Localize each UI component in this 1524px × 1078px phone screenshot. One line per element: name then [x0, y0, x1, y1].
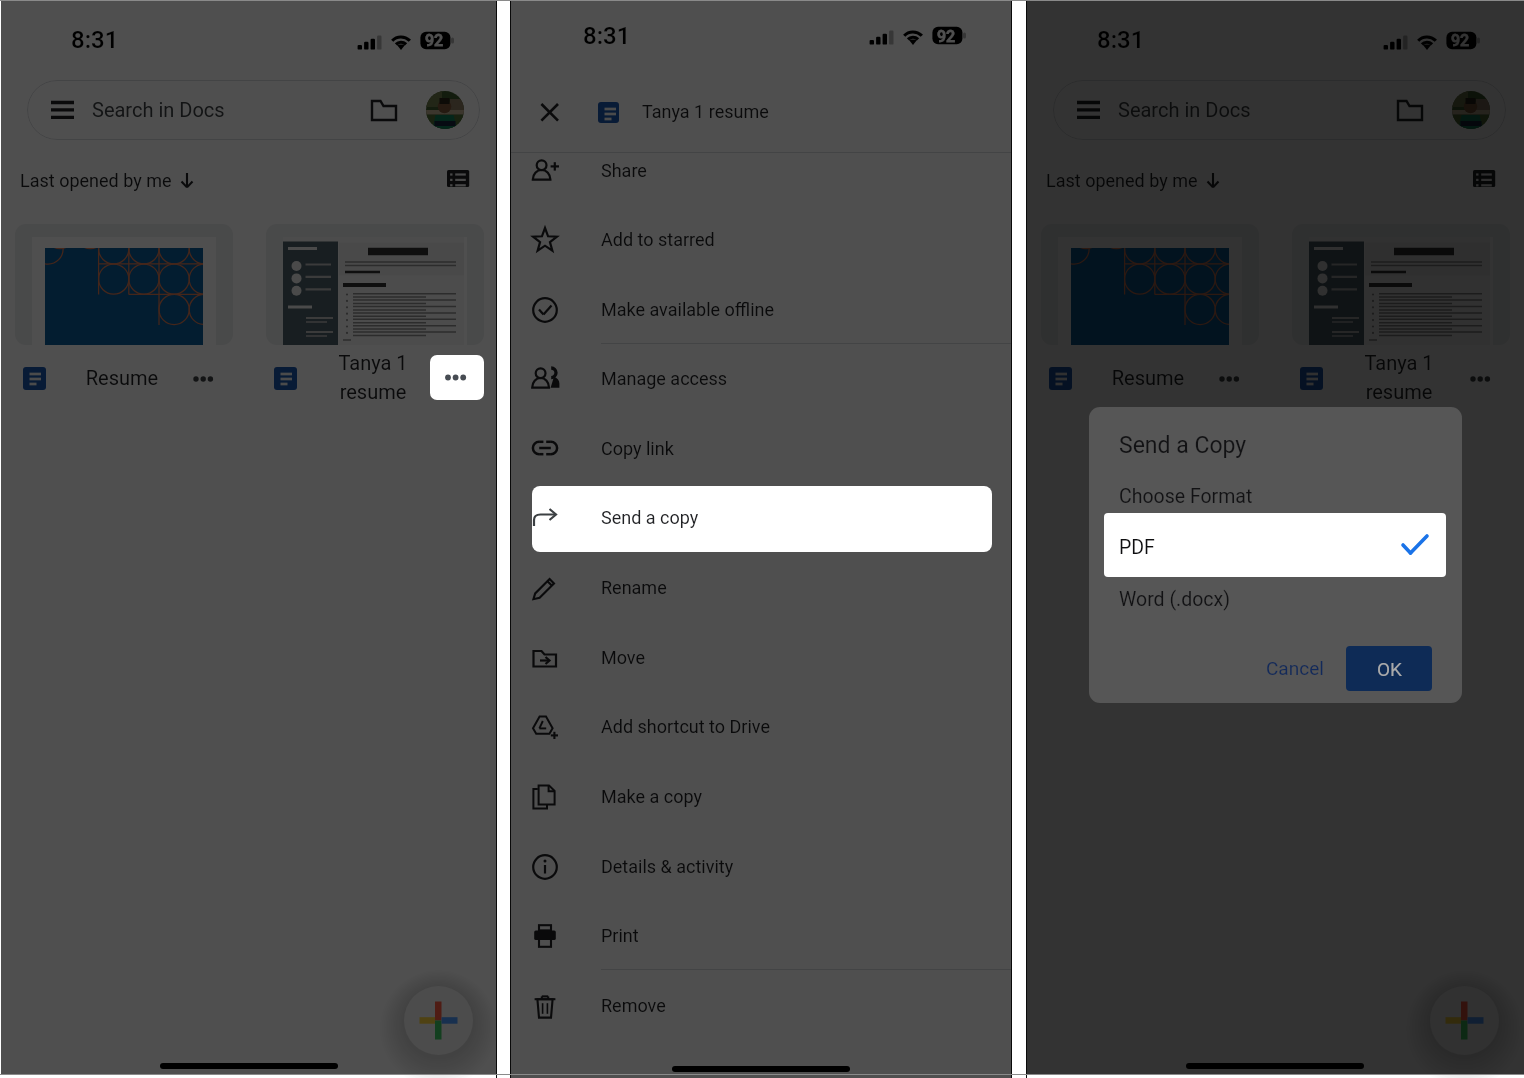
button[interactable]: Print: [532, 904, 991, 970]
button[interactable]: Send a copy: [532, 486, 992, 552]
button[interactable]: Create new document: [404, 986, 473, 1055]
button[interactable]: More options: [193, 368, 223, 390]
button[interactable]: Search in Docs: [1053, 80, 1506, 140]
button[interactable]: More options: [1219, 368, 1249, 390]
staticText: Rename: [601, 577, 667, 598]
staticText: PDF: [1119, 536, 1155, 559]
staticText: Add to starred: [601, 229, 715, 250]
staticText: Search in Docs: [1118, 98, 1251, 121]
button[interactable]: Remove: [532, 974, 991, 1040]
staticText: Move: [601, 647, 645, 668]
button[interactable]: Last opened by me: [1046, 165, 1223, 195]
staticText: Send a Copy: [1119, 432, 1247, 459]
button[interactable]: Switch to list view: [1473, 170, 1496, 188]
button[interactable]: Rename: [532, 556, 991, 622]
staticText: Last opened by me: [20, 170, 172, 191]
staticText: Tanya 1 resume: [307, 351, 439, 404]
staticText: Cancel: [1266, 657, 1324, 679]
button[interactable]: [266, 224, 484, 345]
staticText: Search in Docs: [92, 98, 225, 121]
staticText: Manage access: [601, 368, 728, 389]
staticText: Print: [601, 925, 639, 946]
button[interactable]: OK: [1346, 646, 1432, 691]
staticText: Last opened by me: [1046, 170, 1198, 191]
staticText: Make available offline: [601, 299, 775, 320]
staticText: Resume: [1082, 366, 1214, 389]
button[interactable]: Cancel: [1254, 646, 1336, 689]
staticText: OK: [1377, 658, 1402, 680]
staticText: Details & activity: [601, 856, 734, 877]
button[interactable]: More options: [444, 368, 474, 390]
button[interactable]: Add to starred: [532, 208, 991, 274]
staticText: Copy link: [601, 438, 674, 459]
button[interactable]: Make a copy: [532, 765, 991, 831]
button[interactable]: Last opened by me: [20, 165, 197, 195]
staticText: Make a copy: [601, 786, 702, 807]
staticText: Resume: [56, 366, 188, 389]
staticText: Send a copy: [601, 507, 699, 528]
button[interactable]: Add shortcut to Drive: [532, 695, 991, 761]
button[interactable]: PDF: [1104, 513, 1446, 577]
button[interactable]: More options: [430, 355, 484, 400]
button[interactable]: Copy link: [532, 417, 991, 483]
button[interactable]: Manage access: [532, 347, 991, 413]
button[interactable]: Search in Docs: [27, 80, 480, 140]
button[interactable]: Create new document: [1430, 986, 1499, 1055]
staticText: Word (.docx): [1119, 588, 1230, 611]
button[interactable]: Make available offline: [532, 278, 991, 344]
staticText: 92: [937, 27, 956, 46]
button[interactable]: [1292, 224, 1510, 345]
button[interactable]: Share: [532, 139, 991, 205]
staticText: Add shortcut to Drive: [601, 716, 770, 737]
button[interactable]: Close: [533, 93, 571, 131]
staticText: 92: [425, 31, 444, 50]
staticText: Choose Format: [1119, 485, 1253, 508]
staticText: 8:31: [583, 22, 631, 50]
button[interactable]: Word (.docx): [1104, 577, 1446, 627]
button[interactable]: Send a copy: [532, 487, 991, 553]
staticText: Tanya 1 resume: [642, 101, 769, 122]
button[interactable]: Move: [532, 626, 991, 692]
button[interactable]: Switch to list view: [447, 170, 470, 188]
staticText: 8:31: [1097, 26, 1145, 54]
button[interactable]: [15, 224, 233, 345]
staticText: Remove: [601, 995, 666, 1016]
button[interactable]: [1041, 224, 1259, 345]
staticText: 92: [1451, 31, 1470, 50]
button[interactable]: More options: [1470, 368, 1500, 390]
staticText: Send a copy: [601, 508, 699, 529]
button[interactable]: Details & activity: [532, 835, 991, 901]
staticText: 8:31: [71, 26, 119, 54]
staticText: Tanya 1 resume: [1333, 351, 1465, 404]
staticText: Share: [601, 160, 647, 181]
